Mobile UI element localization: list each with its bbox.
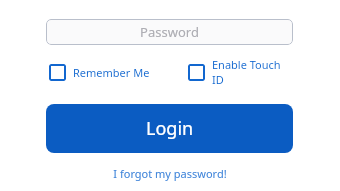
button[interactable]: Password [46, 19, 293, 45]
staticText: Remember Me [73, 65, 150, 80]
staticText: Login [146, 116, 194, 141]
staticText: Enable Touch ID [212, 57, 293, 87]
staticText: I forgot my password! [113, 166, 227, 181]
button[interactable]: Enable Touch ID [188, 57, 293, 87]
button[interactable]: Login [46, 104, 293, 153]
button[interactable]: I forgot my password! [46, 165, 293, 181]
button[interactable]: Remember Me [49, 64, 150, 81]
staticText: Password [140, 23, 199, 41]
